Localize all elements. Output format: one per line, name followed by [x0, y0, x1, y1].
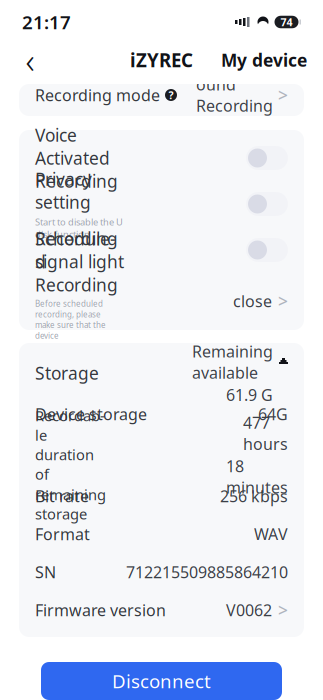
- button[interactable]: Privacy setting: [19, 180, 304, 228]
- button[interactable]: Recording signal light: [19, 228, 304, 272]
- staticText: >: [278, 289, 288, 312]
- staticText: Format: [35, 523, 90, 545]
- staticText: Firmware version: [35, 599, 166, 621]
- staticText: Before scheduled recording, please make …: [35, 298, 106, 341]
- staticText: 712215509885864210: [126, 561, 288, 583]
- staticText: Bit rate: [35, 485, 89, 507]
- staticText: 256 kbps: [220, 485, 288, 507]
- staticText: Start to disable the U disk function: [35, 216, 123, 240]
- staticText: V0062: [226, 599, 272, 621]
- staticText: 74: [280, 15, 292, 29]
- staticText: 21:17: [22, 10, 71, 34]
- button[interactable]: Disconnect: [41, 662, 282, 700]
- staticText: Recording signal light: [35, 227, 124, 273]
- staticText: Storage: [35, 361, 99, 384]
- staticText: Recording mode: [35, 84, 160, 106]
- staticText: >: [278, 83, 288, 106]
- staticText: Privacy setting: [35, 168, 92, 214]
- staticText: Device storage: [35, 403, 147, 425]
- staticText: 18 minutes: [226, 455, 288, 498]
- button[interactable]: Firmware version: [19, 591, 304, 629]
- staticText: ound Recording: [196, 74, 273, 116]
- staticText: 64G: [258, 403, 288, 425]
- staticText: Remaining available: [192, 341, 273, 383]
- staticText: ‹: [25, 37, 34, 83]
- staticText: WAV: [254, 523, 288, 545]
- staticText: Voice Activated Recording: [35, 123, 118, 193]
- staticText: close: [233, 290, 272, 312]
- staticText: ?: [168, 88, 173, 102]
- staticText: 477 hours: [243, 412, 288, 454]
- staticText: is in control mode and has sufficient po…: [35, 343, 119, 375]
- staticText: SN: [35, 561, 56, 583]
- button[interactable]: Recording mode: [19, 84, 304, 106]
- button[interactable]: Back: [10, 44, 50, 76]
- staticText: iZYREC: [130, 48, 193, 72]
- staticText: >: [278, 598, 288, 621]
- button[interactable]: Voice Activated Recording: [19, 136, 304, 180]
- staticText: My device: [221, 48, 307, 71]
- staticText: Scheduled Recording: [35, 227, 118, 296]
- button[interactable]: Storage: [19, 351, 304, 395]
- staticText: remaining storage: [35, 485, 106, 524]
- button[interactable]: My device: [215, 44, 313, 76]
- button[interactable]: Scheduled Recording: [19, 280, 304, 322]
- staticText: 61.9 G: [226, 384, 273, 405]
- staticText: Recordable duration of: [35, 386, 105, 484]
- staticText: Disconnect: [112, 669, 211, 693]
